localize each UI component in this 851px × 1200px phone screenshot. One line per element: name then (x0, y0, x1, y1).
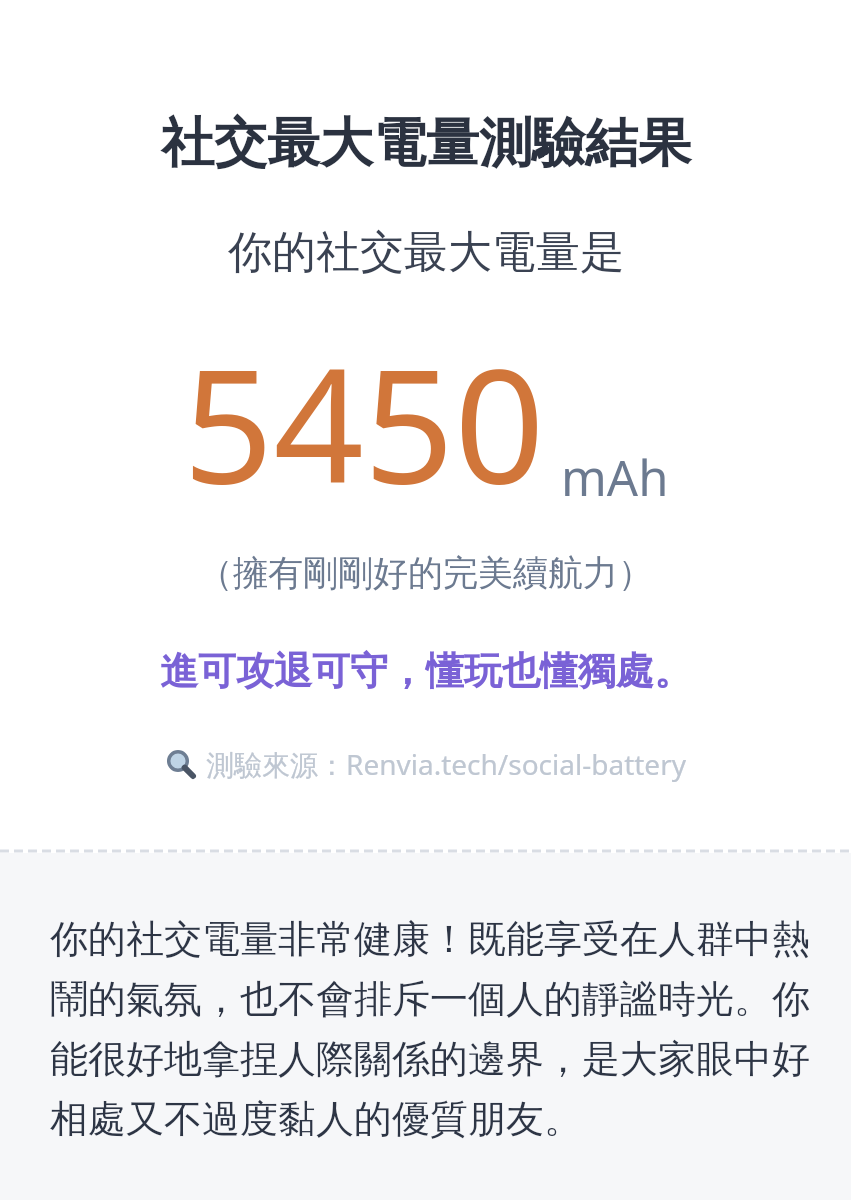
other: Search source (166, 749, 196, 779)
staticText: 5450 (183, 314, 545, 529)
button[interactable]: Search source (162, 743, 690, 785)
button[interactable]: 社交最大電量測驗結果 (20, 110, 831, 177)
staticText: （擁有剛剛好的完美續航力） (198, 551, 653, 595)
staticText: 你的社交電量非常健康！既能享受在人群中熱鬧的氣氛，也不會排斥一個人的靜謐時光。你… (50, 915, 815, 1143)
staticText: 進可攻退可守，懂玩也懂獨處。 (160, 647, 692, 695)
staticText: 你的社交最大電量是 (228, 225, 624, 280)
staticText: 社交最大電量測驗結果 (161, 110, 691, 177)
staticText: 測驗來源：Renvia.tech/social-battery (206, 745, 686, 783)
staticText: mAh (561, 444, 669, 511)
